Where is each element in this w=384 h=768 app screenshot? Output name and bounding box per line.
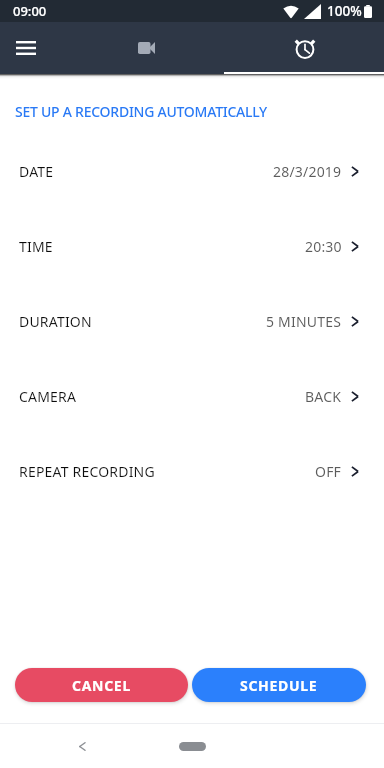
button[interactable]: DATE (0, 134, 384, 209)
staticText: CANCEL (72, 676, 131, 695)
button[interactable]: Home (179, 742, 206, 751)
button[interactable]: DURATION (0, 284, 384, 359)
staticText: 5 MINUTES (266, 312, 342, 331)
staticText: TIME (19, 237, 53, 256)
button[interactable]: REPEAT RECORDING (0, 434, 384, 509)
button[interactable]: SCHEDULE (192, 668, 366, 702)
button[interactable]: Scheduled recording tab (224, 22, 384, 74)
staticText: 20:30 (305, 237, 342, 256)
button[interactable]: CAMERA (0, 359, 384, 434)
button[interactable]: CANCEL (15, 668, 188, 702)
staticText: SCHEDULE (240, 676, 318, 695)
button[interactable]: Back (70, 734, 94, 758)
button[interactable]: Menu (2, 24, 50, 72)
staticText: DURATION (19, 312, 92, 331)
staticText: BACK (305, 387, 342, 406)
staticText: SET UP A RECORDING AUTOMATICALLY (15, 102, 267, 121)
staticText: REPEAT RECORDING (19, 462, 155, 481)
button[interactable]: TIME (0, 209, 384, 284)
staticText: DATE (19, 162, 54, 181)
staticText: 28/3/2019 (273, 162, 342, 181)
staticText: CAMERA (19, 387, 77, 406)
button[interactable]: Record video tab (64, 22, 224, 74)
staticText: OFF (315, 462, 342, 481)
staticText: 09:00 (13, 2, 47, 20)
staticText: 100% (327, 2, 362, 20)
